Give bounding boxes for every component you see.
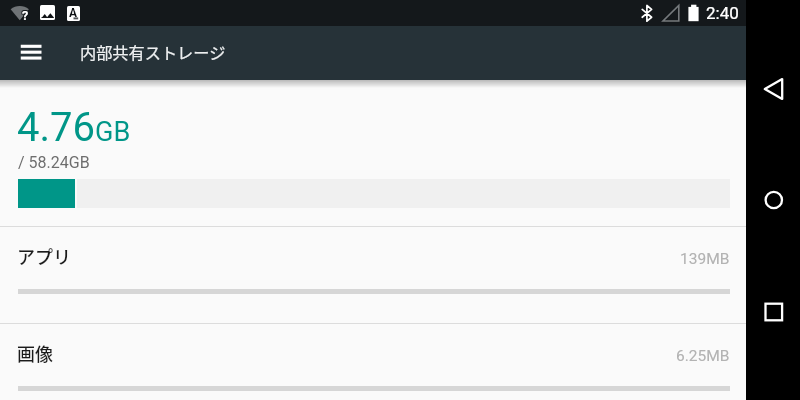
- staticText: アプリ: [17, 243, 71, 269]
- staticText: 内部共有ストレージ: [80, 40, 226, 63]
- staticText: 2:40: [706, 3, 739, 23]
- staticText: 画像: [17, 340, 53, 366]
- staticText: ?: [21, 9, 28, 24]
- staticText: ?: [23, 9, 30, 24]
- button[interactable]: Open navigation drawer: [6, 31, 50, 75]
- button[interactable]: Home: [748, 174, 798, 224]
- staticText: ?: [21, 8, 28, 23]
- staticText: / 58.24GB: [18, 153, 90, 172]
- staticText: ?: [23, 7, 30, 22]
- staticText: 4.76GB: [17, 104, 131, 151]
- button[interactable]: Recent apps: [748, 286, 798, 336]
- staticText: ?: [23, 8, 30, 23]
- staticText: ?: [22, 8, 29, 23]
- staticText: ?: [21, 7, 28, 22]
- staticText: ?: [22, 9, 29, 24]
- staticText: A: [69, 6, 78, 20]
- staticText: ?: [22, 7, 29, 22]
- staticText: 6.25MB: [676, 347, 730, 365]
- staticText: 139MB: [680, 250, 730, 268]
- button[interactable]: Back: [748, 64, 798, 114]
- button[interactable]: 画像: [0, 323, 746, 400]
- button[interactable]: アプリ: [0, 226, 746, 322]
